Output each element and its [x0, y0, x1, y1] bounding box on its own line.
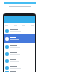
button[interactable] — [4, 57, 35, 64]
button[interactable] — [4, 43, 35, 50]
button[interactable] — [4, 27, 35, 34]
button[interactable] — [4, 34, 35, 43]
button[interactable] — [4, 64, 35, 71]
button[interactable] — [4, 71, 35, 72]
button[interactable] — [4, 50, 35, 57]
